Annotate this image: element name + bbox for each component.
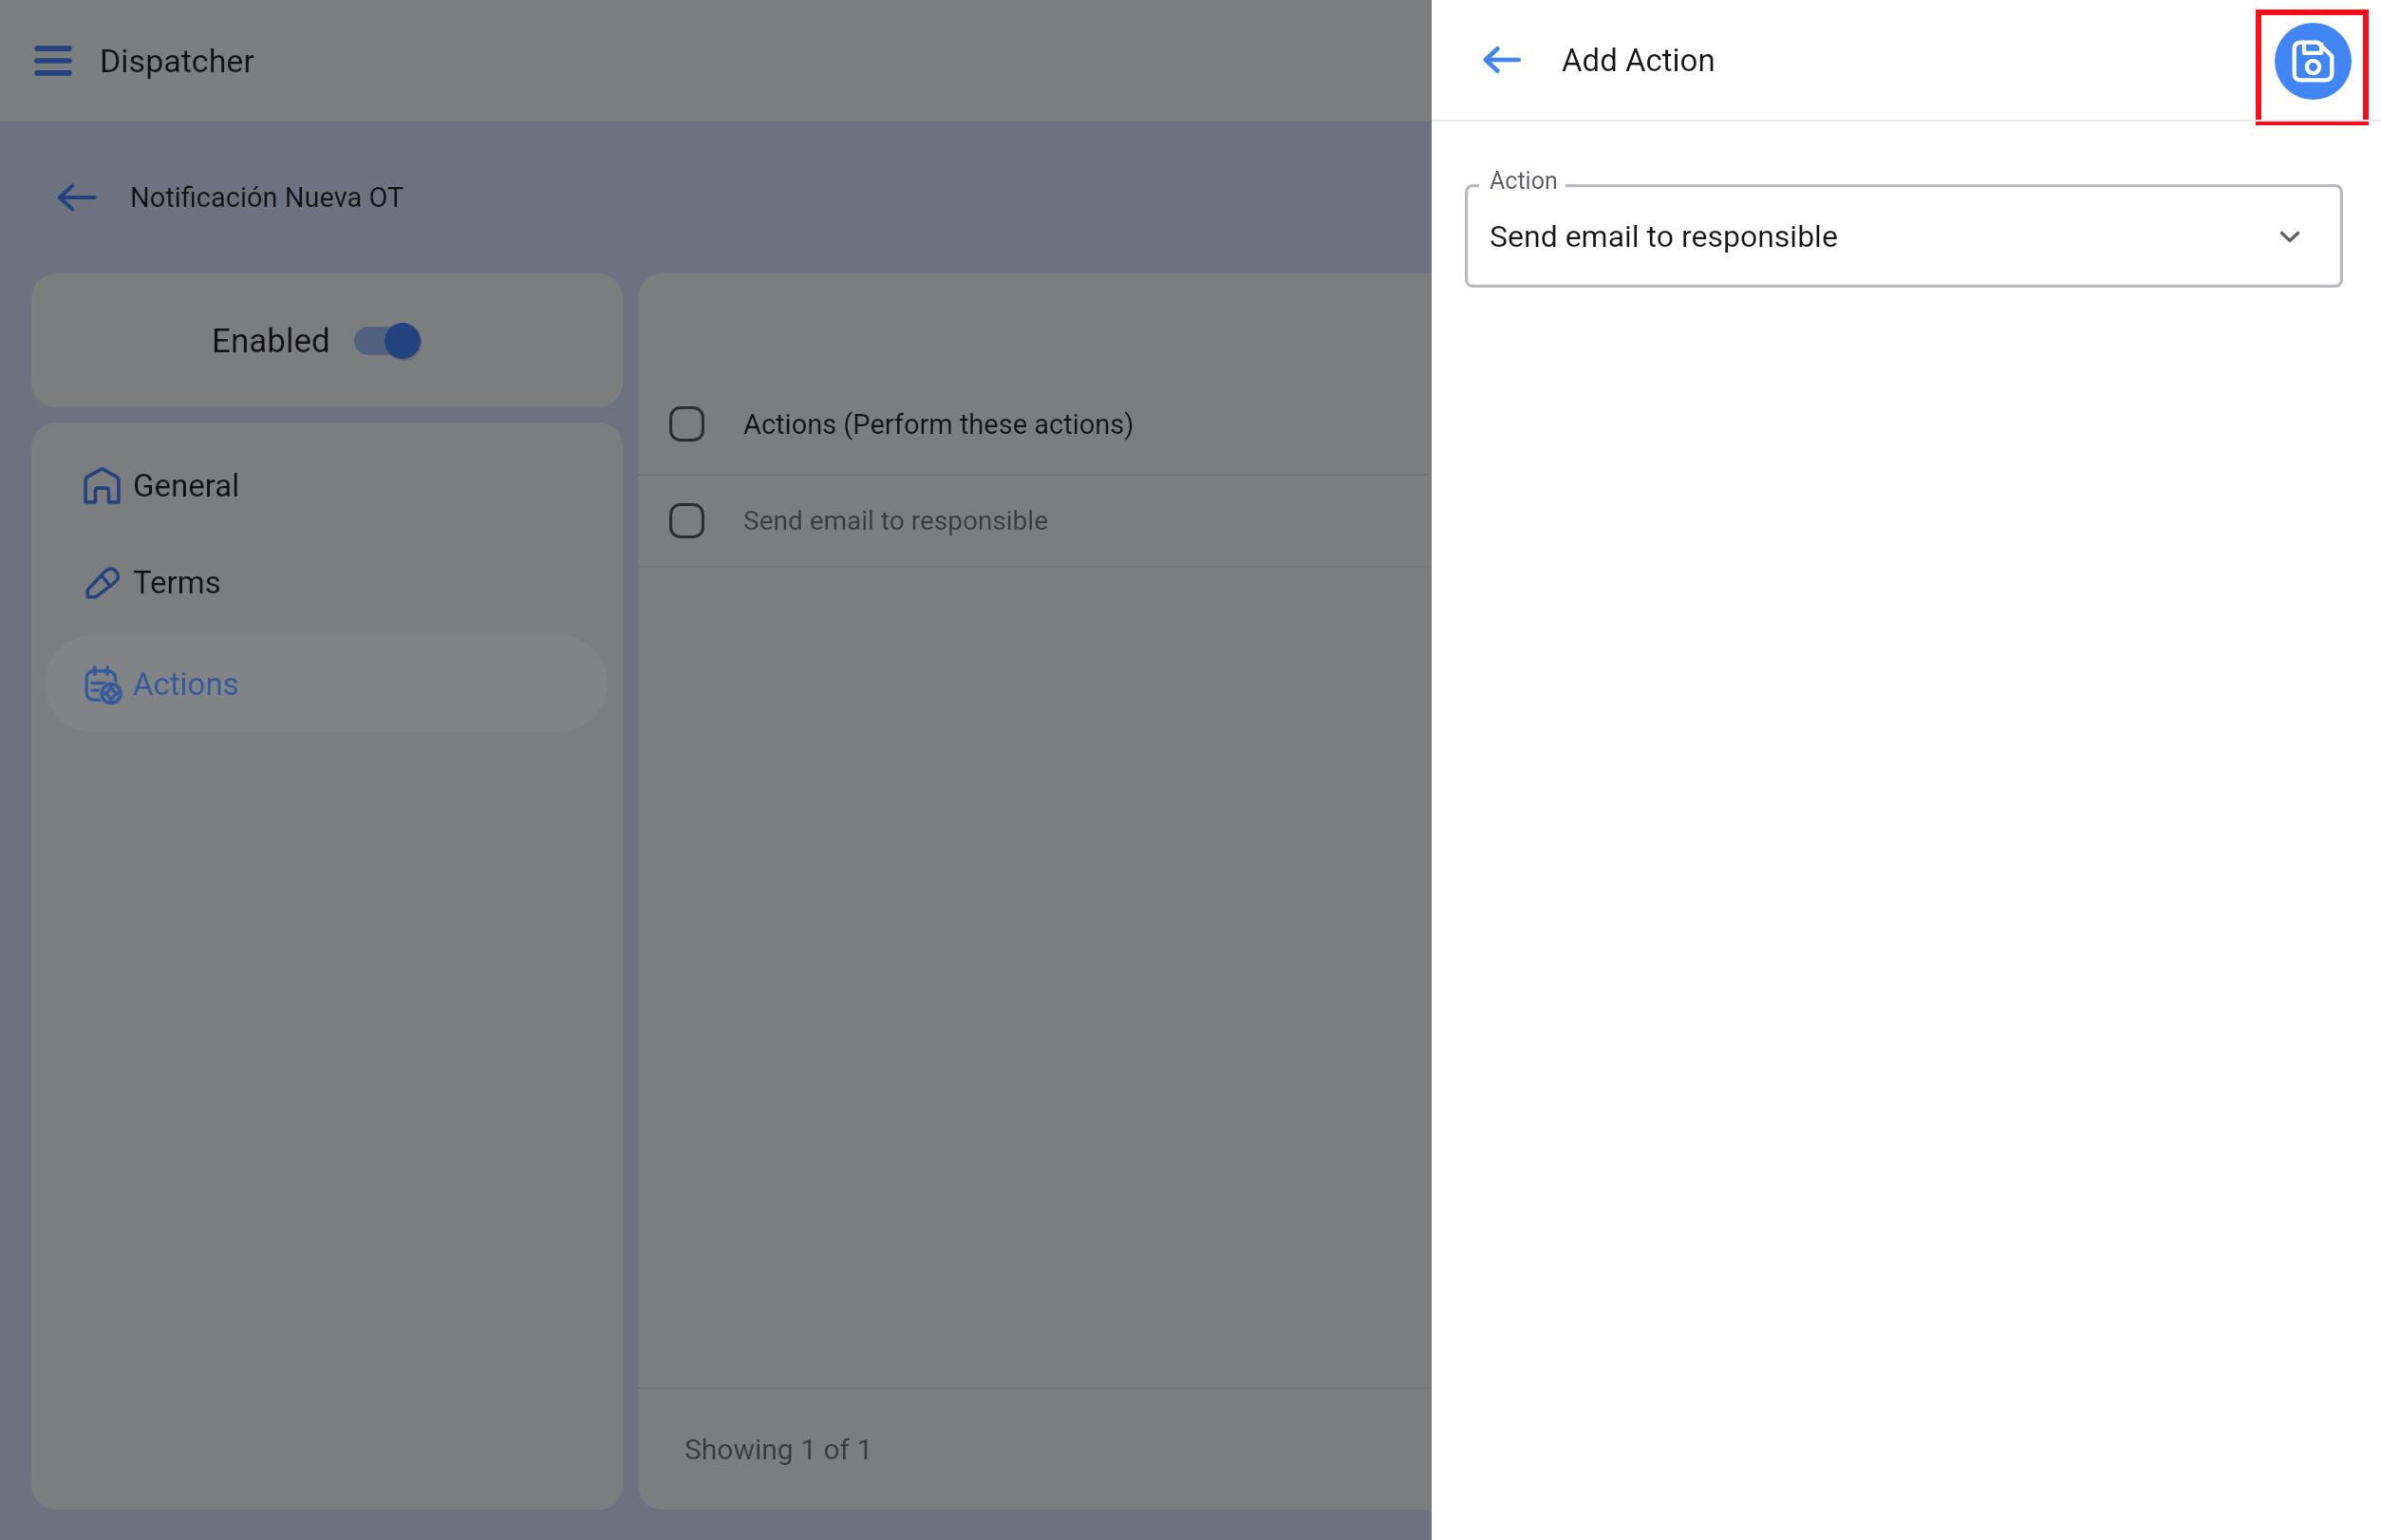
button[interactable]: Back bbox=[1472, 29, 1532, 90]
staticText: Actions (Perform these actions) bbox=[743, 408, 1134, 441]
staticText: Notificación Nueva OT bbox=[130, 181, 404, 214]
staticText: Enabled bbox=[212, 322, 330, 361]
button[interactable]: Actions bbox=[45, 635, 608, 732]
button[interactable]: Send email to responsible bbox=[1465, 184, 2343, 288]
button[interactable]: Enabled toggle bbox=[356, 318, 422, 364]
staticText: Dispatcher bbox=[100, 42, 254, 80]
button[interactable]: Open navigation menu bbox=[19, 27, 87, 95]
staticText: Actions bbox=[133, 666, 239, 703]
staticText: Terms bbox=[133, 564, 221, 601]
button[interactable]: General bbox=[45, 437, 608, 534]
button[interactable]: Back bbox=[47, 167, 107, 228]
staticText: Send email to responsible bbox=[743, 505, 1048, 536]
staticText: Action bbox=[1490, 167, 1558, 195]
staticText: Add Action bbox=[1562, 42, 1715, 79]
staticText: Send email to responsible bbox=[1490, 218, 1838, 254]
button[interactable]: Send email to responsible bbox=[638, 476, 2381, 566]
button[interactable]: Terms bbox=[45, 534, 608, 630]
staticText: General bbox=[133, 467, 240, 504]
button[interactable]: Save bbox=[2275, 23, 2352, 100]
button[interactable]: Actions (Perform these actions) bbox=[638, 374, 2381, 474]
staticText: Showing 1 of 1 bbox=[684, 1433, 873, 1466]
